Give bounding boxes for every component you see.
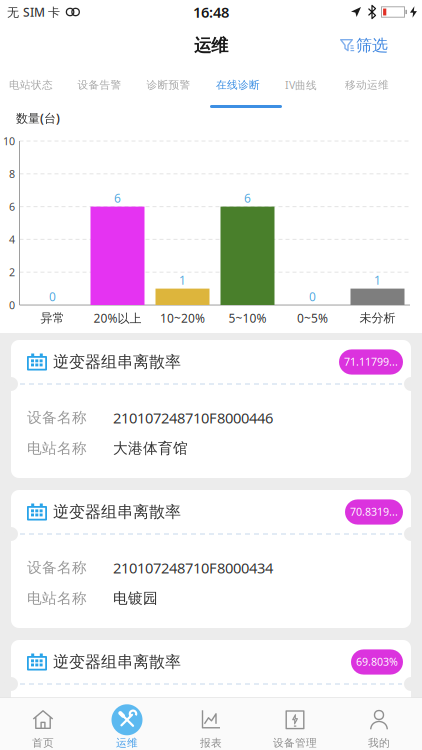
staticText: 报表: [200, 736, 222, 749]
staticText: 电站状态: [9, 78, 53, 91]
staticText: 5~10%: [228, 310, 266, 326]
button[interactable]: 首页: [1, 698, 85, 750]
staticText: 移动运维: [345, 78, 389, 91]
staticText: 筛选: [356, 36, 388, 55]
staticText: 电镀园: [113, 589, 158, 607]
button[interactable]: 逆变器组串离散率: [11, 490, 411, 628]
staticText: 10: [3, 134, 15, 148]
button[interactable]: 在线诊断: [205, 67, 271, 103]
staticText: 逆变器组串离散率: [53, 652, 181, 672]
staticText: 运维: [194, 35, 228, 56]
staticText: 在线诊断: [216, 78, 260, 91]
staticText: 16:48: [193, 2, 229, 22]
staticText: 设备管理: [273, 736, 317, 749]
staticText: 逆变器组串离散率: [53, 502, 181, 522]
staticText: 1: [374, 272, 381, 288]
staticText: 诊断预警: [146, 78, 190, 91]
staticText: 71.11799...: [344, 354, 398, 369]
staticText: 无 SIM 卡: [7, 4, 60, 20]
staticText: 2: [9, 265, 15, 279]
button[interactable]: 我的: [337, 698, 421, 750]
button[interactable]: 诊断预警: [135, 67, 201, 103]
staticText: 电站名称: [27, 589, 87, 607]
staticText: 逆变器组串离散率: [53, 352, 181, 372]
staticText: 数量(台): [16, 110, 60, 126]
staticText: 设备名称: [27, 559, 87, 577]
staticText: IV曲线: [285, 78, 317, 92]
staticText: 运维: [116, 736, 138, 749]
staticText: 210107248710F8000446: [113, 408, 273, 427]
staticText: 70.8319...: [350, 504, 398, 519]
button[interactable]: 设备管理: [253, 698, 337, 750]
button[interactable]: 设备告警: [66, 67, 132, 103]
staticText: 20%以上: [93, 310, 141, 326]
staticText: 未分析: [359, 311, 395, 325]
staticText: 6: [244, 190, 251, 206]
button[interactable]: IV曲线: [268, 67, 334, 103]
button[interactable]: 筛选: [340, 36, 422, 55]
staticText: 1: [179, 272, 186, 288]
staticText: 8: [9, 167, 15, 181]
button[interactable]: 逆变器组串离散率: [11, 340, 411, 478]
staticText: 0: [9, 298, 15, 312]
staticText: 设备告警: [77, 78, 121, 91]
button[interactable]: 运维: [85, 698, 169, 750]
button[interactable]: 电站状态: [0, 67, 64, 103]
button[interactable]: 逆变器组串离散率: [11, 640, 411, 750]
button[interactable]: 移动运维: [334, 67, 400, 103]
staticText: 我的: [368, 736, 390, 749]
staticText: 10~20%: [160, 310, 205, 326]
staticText: 6: [9, 199, 15, 214]
staticText: 首页: [32, 736, 54, 749]
staticText: 0: [309, 288, 316, 304]
staticText: 电站名称: [27, 439, 87, 457]
staticText: 210107248710F8000434: [113, 558, 273, 577]
staticText: 设备名称: [27, 409, 87, 427]
staticText: 异常: [40, 311, 64, 325]
staticText: 0~5%: [297, 310, 328, 326]
staticText: 大港体育馆: [113, 439, 188, 457]
staticText: 0: [49, 288, 56, 304]
staticText: 4: [9, 232, 15, 246]
staticText: 69.803%: [356, 654, 398, 669]
button[interactable]: 报表: [169, 698, 253, 750]
staticText: 6: [114, 190, 121, 206]
